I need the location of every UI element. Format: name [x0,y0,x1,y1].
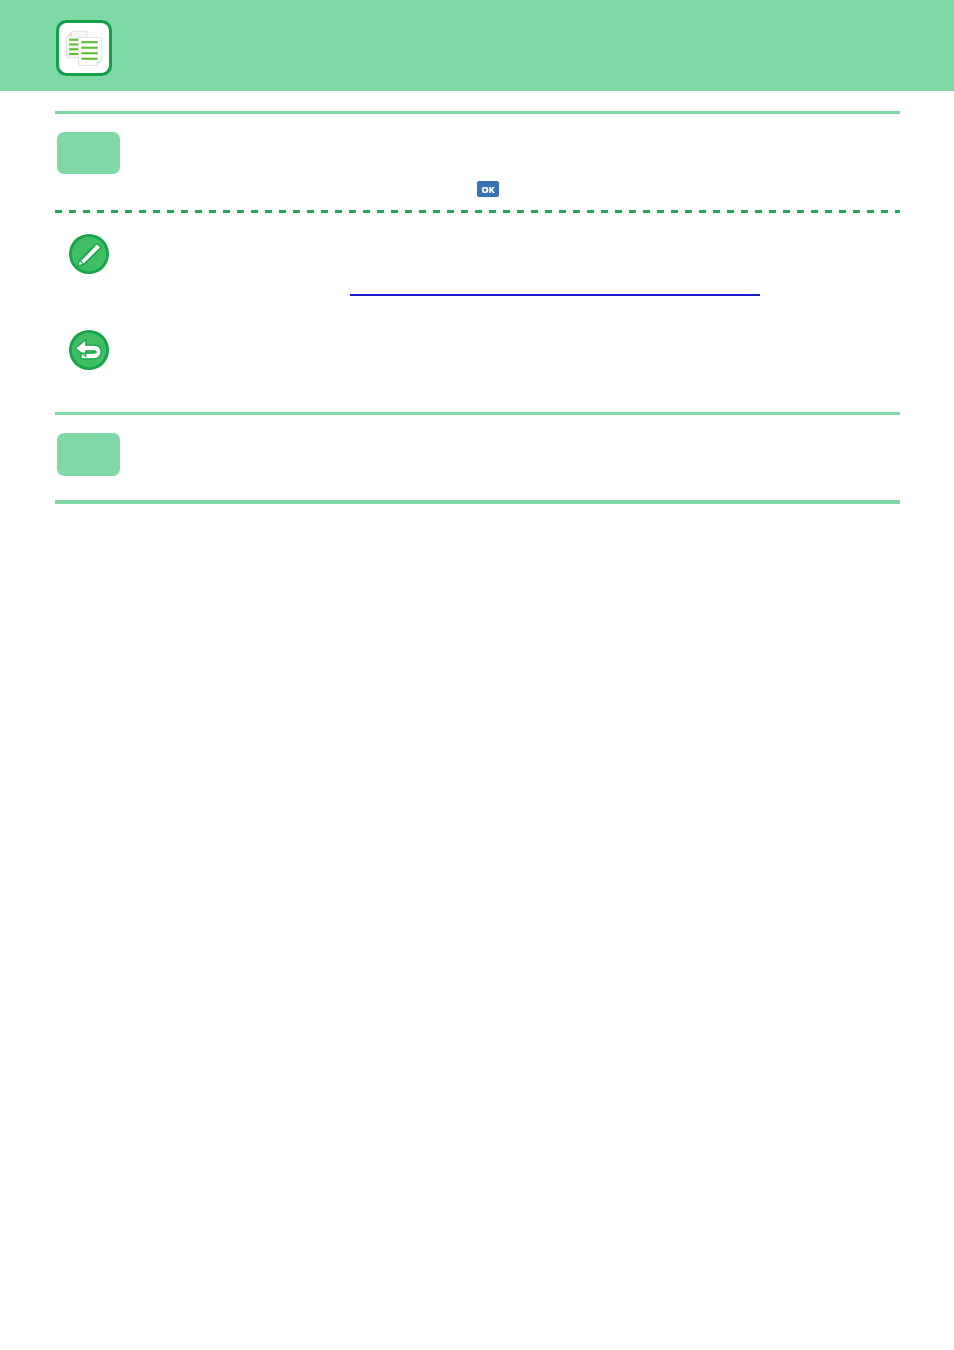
button[interactable]: Note [69,234,109,274]
button[interactable]: Step 2 [57,433,120,476]
staticText: OK [481,183,495,195]
button[interactable]: Copy [56,20,112,76]
button[interactable]: Cancel [69,330,109,370]
button[interactable]: Step 1 [57,132,120,174]
button[interactable]: OK [477,181,499,197]
